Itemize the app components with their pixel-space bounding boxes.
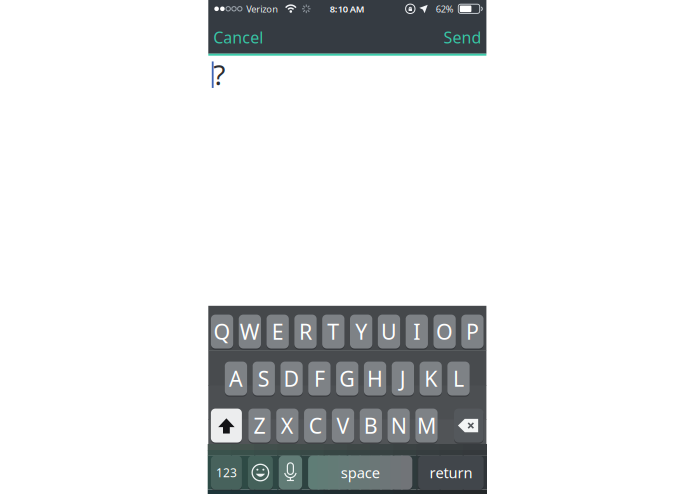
button[interactable]: U (378, 315, 400, 348)
staticText: return (429, 463, 472, 482)
staticText: V (336, 411, 349, 440)
button[interactable]: K (419, 362, 442, 395)
button[interactable]: 123 (211, 456, 242, 489)
staticText: F (314, 364, 325, 393)
staticText: 8:10 AM (330, 3, 365, 15)
button[interactable]: L (447, 362, 470, 395)
staticText: 123 (216, 465, 237, 480)
staticText: E (272, 317, 284, 346)
button[interactable]: Send (434, 24, 490, 50)
button[interactable]: F (308, 362, 331, 395)
button[interactable]: X (276, 409, 298, 442)
staticText: Q (214, 317, 231, 346)
staticText: space (341, 463, 380, 482)
staticText: Verizon (246, 3, 278, 15)
staticText: Y (355, 317, 367, 346)
button[interactable]: H (364, 362, 386, 395)
staticText: B (364, 411, 378, 440)
staticText: K (424, 364, 437, 393)
button[interactable]: return (418, 456, 484, 489)
staticText: N (391, 411, 407, 440)
staticText: H (367, 364, 383, 393)
staticText: O (436, 317, 453, 346)
button[interactable]: C (304, 409, 326, 442)
staticText: ? (213, 56, 225, 93)
button[interactable]: G (336, 362, 358, 395)
button[interactable]: V (332, 409, 354, 442)
button[interactable]: space (308, 456, 412, 489)
button[interactable]: O (433, 315, 456, 348)
button[interactable]: R (294, 315, 317, 348)
staticText: Z (254, 411, 266, 440)
staticText: T (327, 317, 339, 346)
staticText: R (299, 317, 312, 346)
staticText: 62% (436, 3, 454, 15)
button[interactable] (248, 456, 273, 489)
staticText: P (466, 317, 479, 346)
staticText: L (453, 364, 464, 393)
button[interactable]: S (253, 362, 275, 395)
staticText: X (281, 411, 294, 440)
button[interactable] (454, 409, 483, 442)
button[interactable] (279, 456, 302, 489)
staticText: D (284, 364, 300, 393)
button[interactable]: N (387, 409, 410, 442)
button[interactable]: M (415, 409, 438, 442)
staticText: Send (443, 27, 481, 48)
staticText: C (309, 411, 322, 440)
staticText: M (417, 411, 436, 440)
staticText: U (381, 317, 397, 346)
button[interactable]: Y (350, 315, 372, 348)
staticText: A (229, 364, 243, 393)
button[interactable]: Q (211, 315, 233, 348)
staticText: W (240, 317, 260, 346)
button[interactable]: W (239, 315, 261, 348)
button[interactable] (211, 409, 242, 442)
staticText: I (413, 317, 420, 346)
staticText: J (400, 364, 406, 393)
button[interactable]: B (360, 409, 382, 442)
staticText: G (339, 364, 355, 393)
button[interactable]: J (392, 362, 414, 395)
button[interactable]: Cancel (200, 24, 276, 50)
staticText: S (258, 364, 270, 393)
button[interactable]: D (280, 362, 303, 395)
button[interactable]: T (322, 315, 344, 348)
button[interactable]: I (406, 315, 428, 348)
button[interactable]: P (461, 315, 484, 348)
button[interactable]: A (225, 362, 247, 395)
button[interactable]: E (266, 315, 289, 348)
button[interactable]: Z (248, 409, 271, 442)
staticText: Cancel (213, 27, 263, 48)
